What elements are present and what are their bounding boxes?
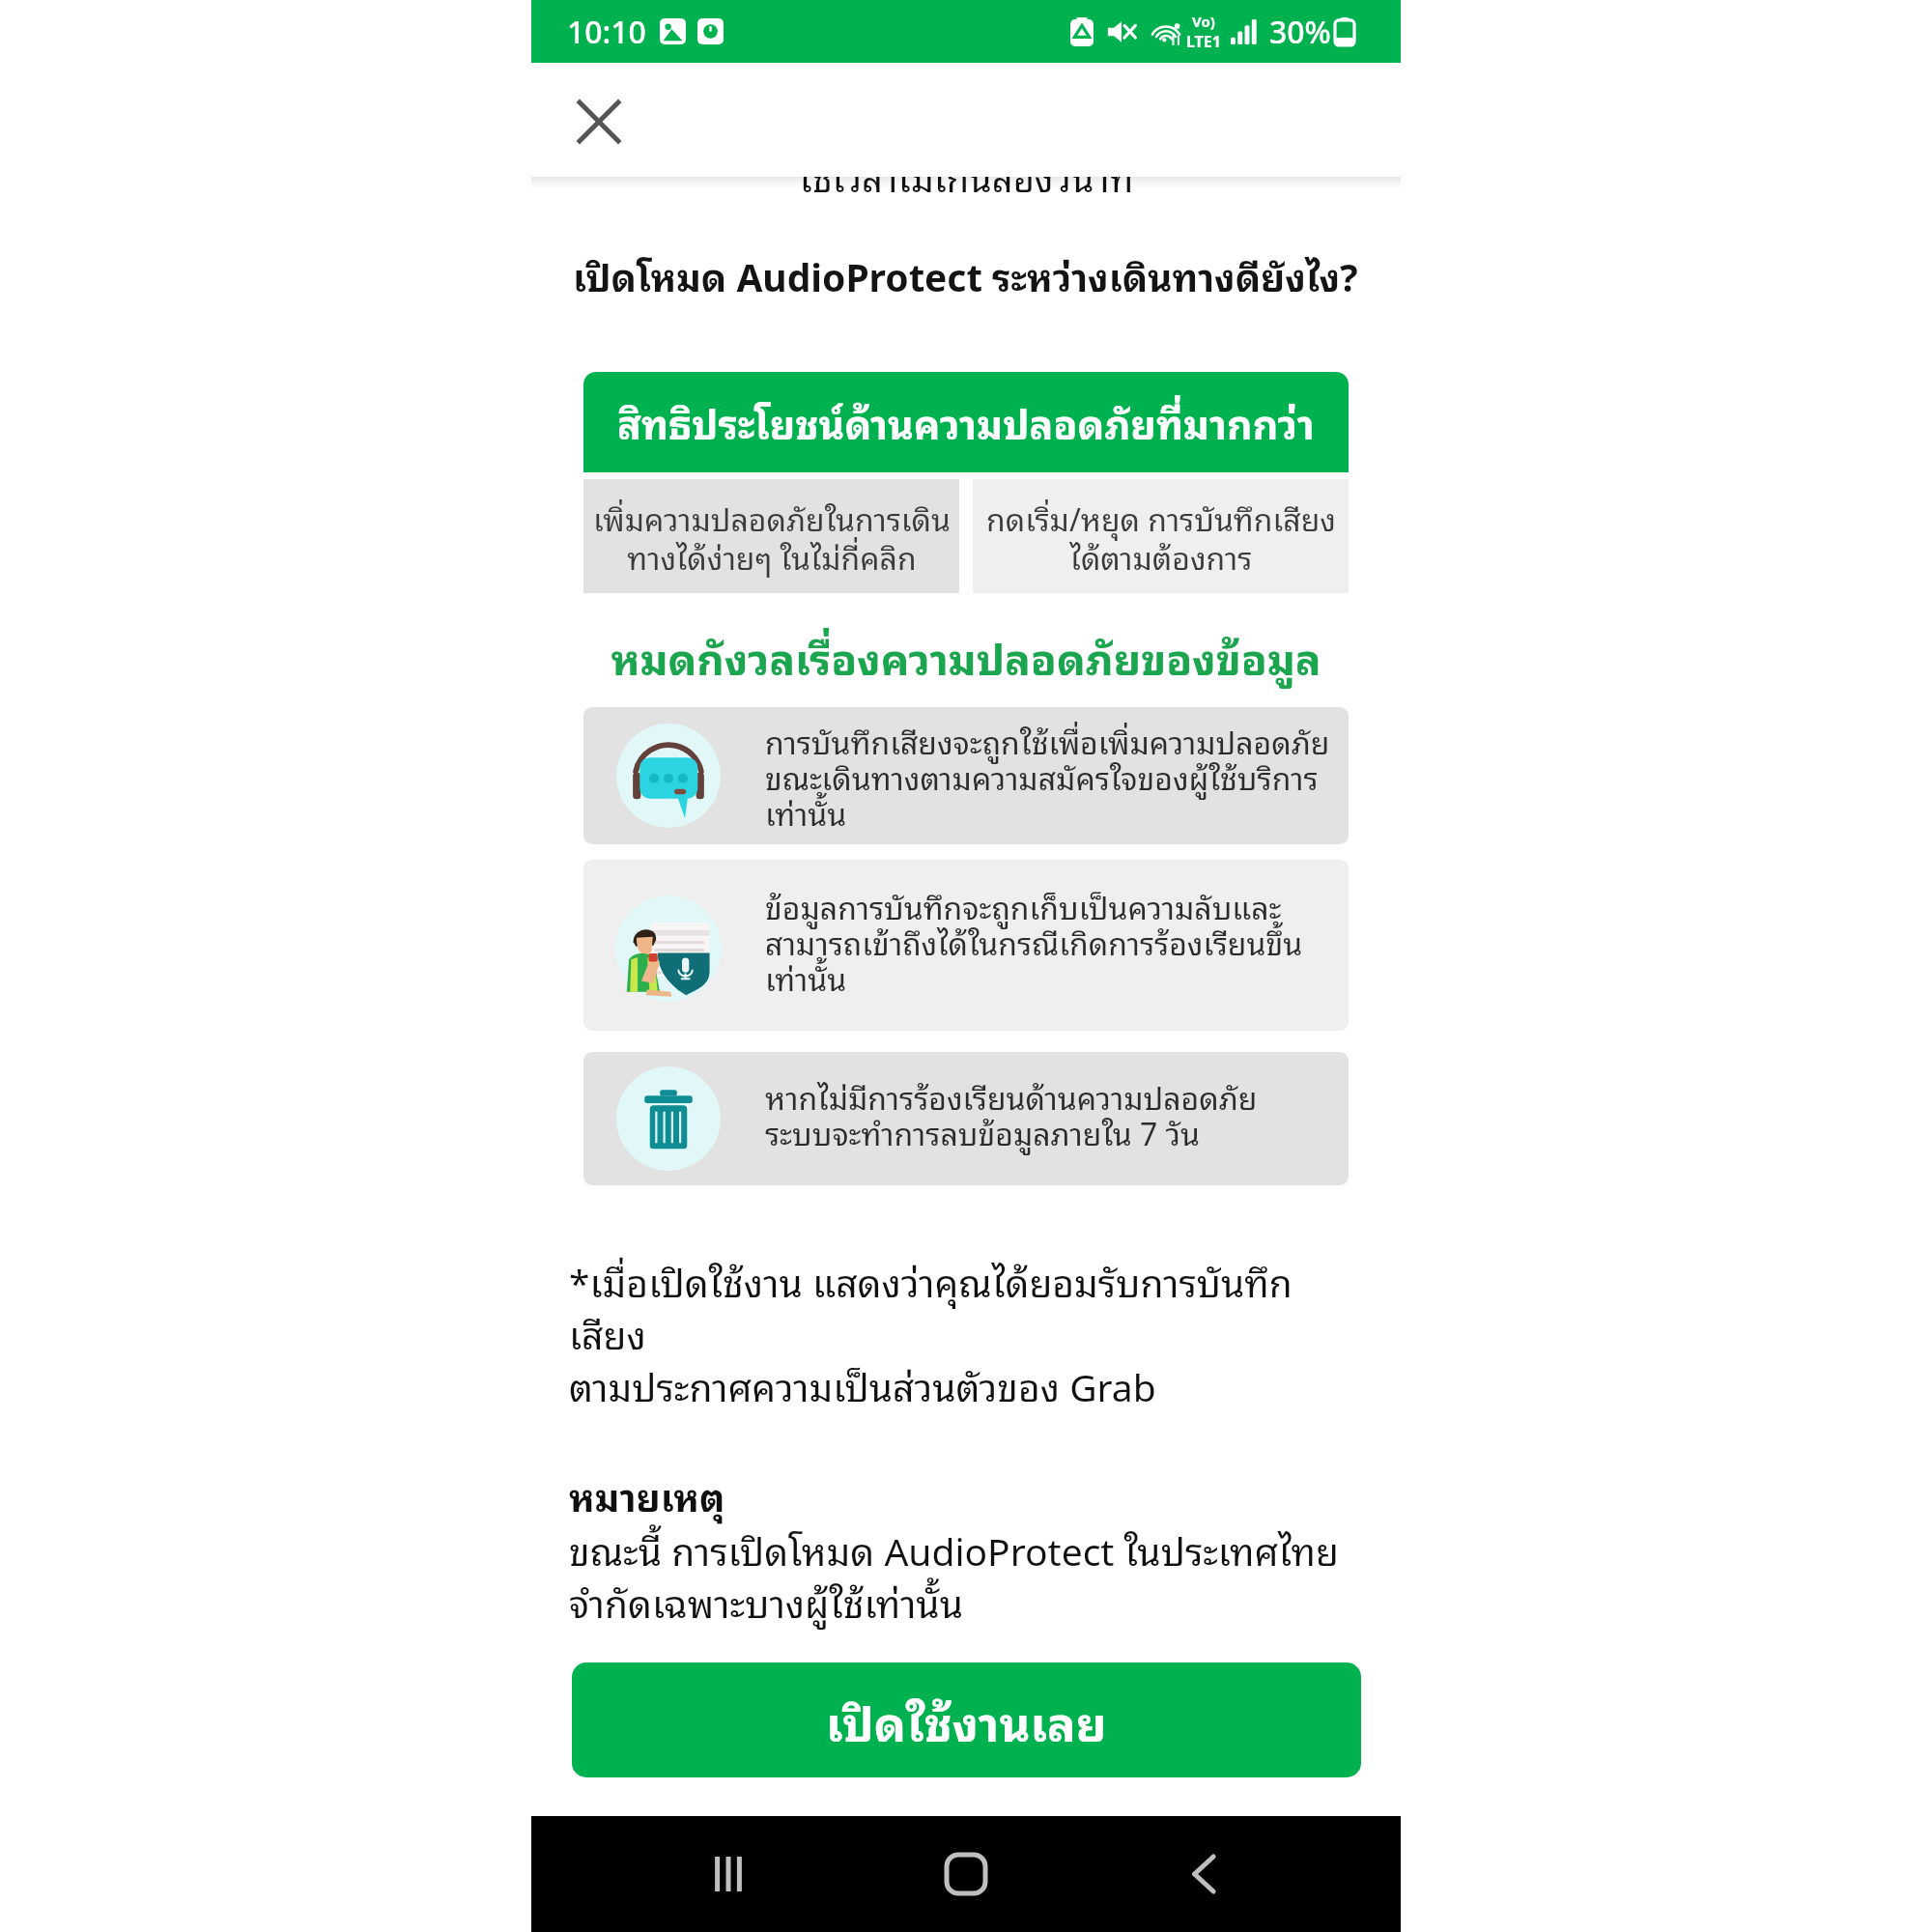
staticText: เพิ่มความปลอดภัยในการเดิน ทางได้ง่ายๆ ใน… xyxy=(593,493,951,581)
button[interactable]: Home xyxy=(924,1833,1008,1916)
staticText: เปิดโหมด AudioProtect ระหว่างเดินทางดียั… xyxy=(573,244,1358,304)
staticText: หากไม่มีการร้องเรียนด้านความปลอดภัย ระบบ… xyxy=(765,1071,1258,1156)
staticText: ใช้เวลาไม่เกินสองวินาที xyxy=(531,146,1401,205)
staticText: เปิดใช้งานเลย xyxy=(826,1683,1107,1758)
staticText: 30% xyxy=(1269,11,1331,53)
button[interactable]: Recent apps xyxy=(687,1833,770,1916)
staticText: 10:10 xyxy=(567,11,646,53)
staticText: ขณะนี้ การเปิดโหมด AudioProtect ในประเทศ… xyxy=(569,1519,1339,1632)
staticText: LTE1 xyxy=(1186,31,1221,52)
staticText: สิทธิประโยชน์ด้านความปลอดภัยที่มากกว่า xyxy=(617,390,1315,454)
staticText: ข้อมูลการบันทึกจะถูกเก็บเป็นความลับและ ส… xyxy=(765,881,1303,1002)
staticText: Vo) xyxy=(1192,12,1215,31)
button[interactable]: Back xyxy=(1163,1833,1246,1916)
staticText: *เมื่อเปิดใช้งาน แสดงว่าคุณได้ยอมรับการบ… xyxy=(569,1250,1293,1415)
staticText: กดเริ่ม/หยุด การบันทึกเสียง ได้ตามต้องกา… xyxy=(986,493,1336,581)
staticText: หมายเหตุ xyxy=(569,1464,725,1524)
staticText: หมดกังวลเรื่องความปลอดภัยของข้อมูล xyxy=(583,622,1349,690)
staticText: การบันทึกเสียงจะถูกใช้เพื่อเพิ่มความปลอด… xyxy=(765,716,1330,837)
button[interactable]: Close xyxy=(569,92,629,152)
button[interactable]: เปิดใช้งานเลย xyxy=(572,1662,1361,1777)
